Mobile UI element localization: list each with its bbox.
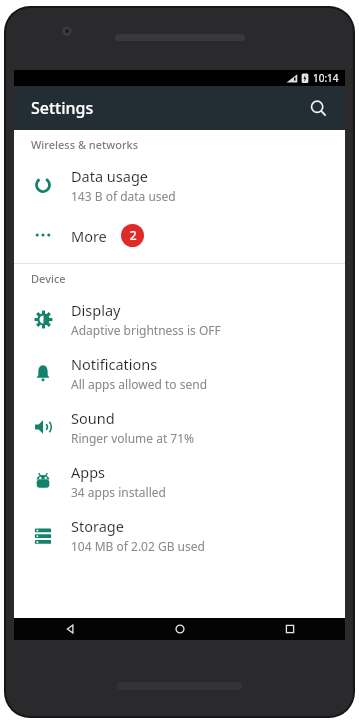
staticText: More [71,226,107,246]
button[interactable]: Back [14,618,125,640]
button[interactable]: Apps [14,454,345,508]
staticText: Wireless & networks [31,137,139,152]
staticText: 10:14 [313,71,339,85]
button[interactable]: Search [301,91,335,125]
button[interactable]: Recent apps [235,618,345,640]
button[interactable]: Data usage [14,158,345,212]
staticText: 143 B of data used [71,188,176,204]
button[interactable]: Display [14,292,345,346]
staticText: Notifications [71,354,158,374]
staticText: Ringer volume at 71% [71,430,195,446]
staticText: Apps [71,462,106,482]
staticText: Settings [31,97,94,119]
staticText: Storage [71,516,124,536]
staticText: 2 [129,227,137,244]
button[interactable]: Home [125,618,235,640]
button[interactable]: Storage [14,508,345,562]
staticText: 104 MB of 2.02 GB used [71,538,205,554]
staticText: Data usage [71,166,148,186]
staticText: Device [31,271,66,286]
staticText: 34 apps installed [71,484,166,500]
button[interactable]: Notifications [14,346,345,400]
button[interactable]: More [14,212,345,258]
button[interactable]: Sound [14,400,345,454]
staticText: Sound [71,408,115,428]
staticText: Adaptive brightness is OFF [71,322,221,338]
staticText: All apps allowed to send [71,376,208,392]
staticText: Display [71,300,121,320]
